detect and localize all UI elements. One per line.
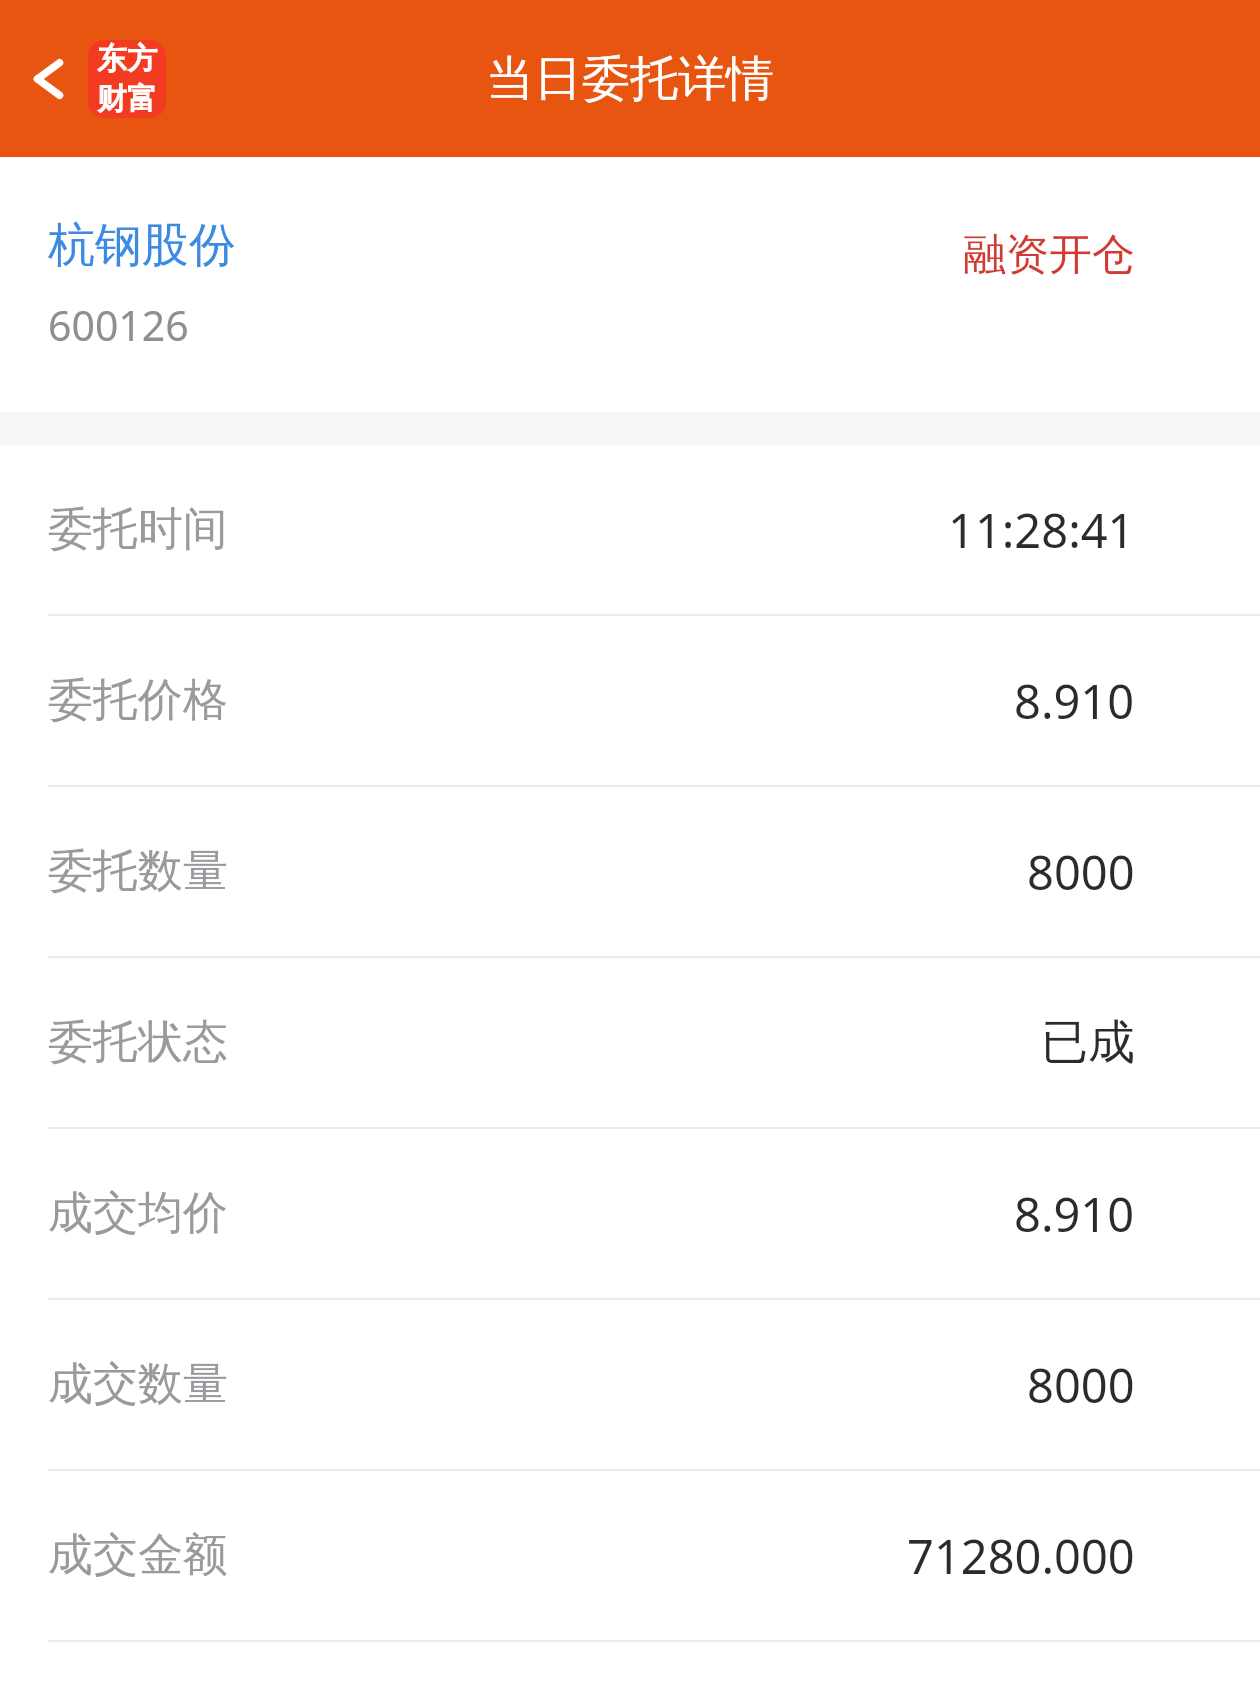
staticText: 成交数量	[48, 1356, 228, 1413]
staticText: 杭钢股份	[48, 216, 236, 275]
staticText: 委托时间	[48, 501, 228, 558]
staticText: 委托数量	[48, 843, 228, 900]
staticText: 8000	[1027, 840, 1135, 904]
staticText: 成交均价	[48, 1185, 228, 1242]
button[interactable]: 委托数量	[0, 787, 1260, 956]
button[interactable]: 成交金额	[0, 1471, 1260, 1640]
staticText: 委托价格	[48, 672, 228, 729]
button[interactable]: 委托时间	[0, 445, 1260, 614]
staticText: 11:28:41	[948, 498, 1135, 562]
staticText: 成交金额	[48, 1527, 228, 1584]
staticText: 8.910	[1014, 1182, 1135, 1246]
staticText: 融资开仓	[963, 228, 1135, 282]
staticText: 东方	[97, 40, 157, 78]
staticText: 71280.000	[907, 1524, 1135, 1588]
staticText: 财富	[97, 80, 157, 118]
staticText: 8.910	[1014, 669, 1135, 733]
staticText: 已成	[1041, 1013, 1135, 1072]
button[interactable]: 委托价格	[0, 616, 1260, 785]
button[interactable]: 委托状态	[0, 958, 1260, 1127]
staticText: 当日委托详情	[486, 49, 774, 109]
staticText: 600126	[48, 297, 189, 353]
staticText: 8000	[1027, 1353, 1135, 1417]
staticText: 委托状态	[48, 1014, 228, 1071]
button[interactable]: 杭钢股份	[0, 157, 1260, 412]
button[interactable]: 成交数量	[0, 1300, 1260, 1469]
other: 东方财富	[88, 40, 166, 118]
button[interactable]: 成交均价	[0, 1129, 1260, 1298]
button[interactable]: Back	[8, 38, 90, 120]
